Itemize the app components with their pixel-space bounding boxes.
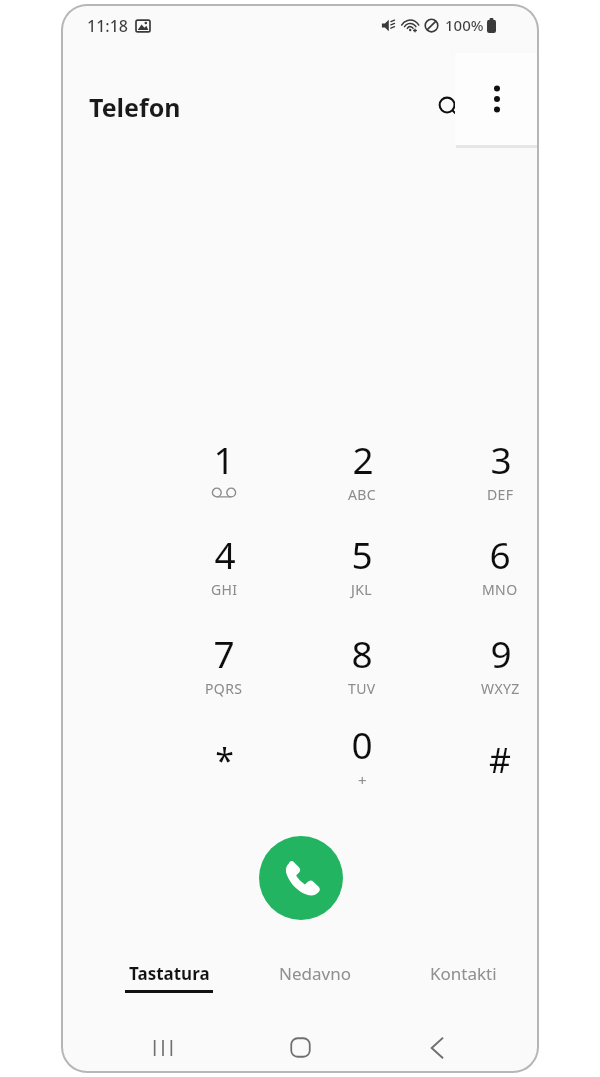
button[interactable]: 6: [438, 529, 537, 615]
staticText: 3: [490, 434, 512, 484]
button[interactable]: Kontakti: [389, 948, 537, 1010]
staticText: *: [215, 737, 234, 783]
staticText: Tastatura: [129, 962, 210, 985]
staticText: 5: [351, 529, 373, 579]
staticText: PQRS: [205, 679, 243, 698]
button[interactable]: 2: [300, 434, 424, 520]
button[interactable]: 0: [300, 719, 424, 805]
button[interactable]: 9: [438, 628, 537, 714]
staticText: GHI: [211, 580, 238, 599]
staticText: 7: [213, 628, 235, 678]
button[interactable]: 3: [438, 434, 537, 520]
button[interactable]: 5: [300, 529, 424, 615]
staticText: 8: [351, 628, 373, 678]
staticText: 1: [213, 434, 235, 484]
staticText: Kontakti: [430, 962, 497, 985]
button[interactable]: Nedavno: [241, 948, 389, 1010]
staticText: 11:18: [87, 15, 128, 37]
staticText: MNO: [482, 580, 518, 599]
button[interactable]: 4: [162, 529, 286, 615]
button[interactable]: Call: [259, 836, 343, 920]
staticText: 4: [214, 529, 236, 579]
button[interactable]: Search: [423, 81, 475, 133]
staticText: 9: [490, 628, 512, 678]
button[interactable]: Back: [401, 1021, 473, 1071]
staticText: +: [358, 770, 367, 790]
staticText: WXYZ: [481, 679, 520, 698]
button[interactable]: Tastatura: [95, 948, 243, 1010]
button[interactable]: #: [438, 719, 537, 805]
staticText: DEF: [487, 485, 514, 504]
staticText: 2: [352, 434, 374, 484]
staticText: 6: [489, 529, 511, 579]
staticText: JKL: [351, 580, 373, 599]
button[interactable]: Home: [264, 1021, 336, 1071]
staticText: Nedavno: [279, 962, 351, 985]
staticText: Telefon: [89, 90, 181, 124]
button[interactable]: *: [162, 719, 286, 805]
button[interactable]: Recents: [127, 1021, 199, 1071]
button[interactable]: More options: [455, 53, 537, 145]
button[interactable]: 1: [162, 434, 286, 520]
staticText: TUV: [348, 679, 376, 698]
staticText: #: [489, 737, 511, 783]
button[interactable]: 8: [300, 628, 424, 714]
staticText: 0: [351, 719, 373, 769]
staticText: ABC: [348, 485, 377, 504]
staticText: 100%: [445, 15, 484, 35]
button[interactable]: 7: [162, 628, 286, 714]
